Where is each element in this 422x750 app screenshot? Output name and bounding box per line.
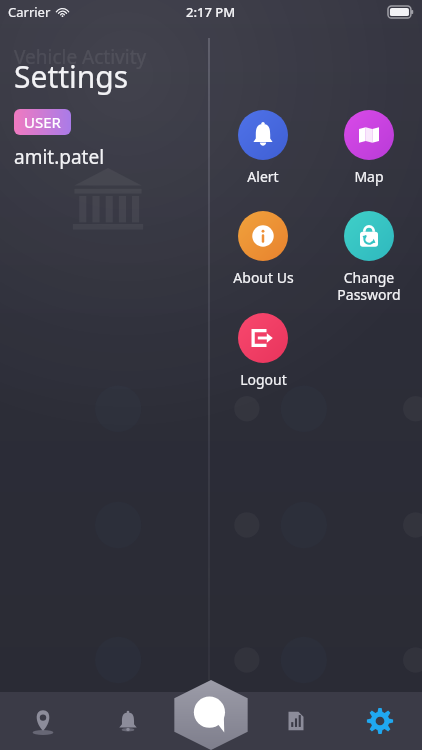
button[interactable]: Location	[0, 692, 85, 750]
staticText: Alert	[247, 167, 279, 186]
staticText: Carrier	[8, 3, 51, 21]
staticText: Vehicle Activity	[14, 44, 147, 70]
button[interactable]: Settings	[338, 692, 422, 750]
staticText: About Us	[233, 268, 294, 287]
button[interactable]: Logout	[215, 313, 311, 389]
staticText: Map	[354, 167, 384, 186]
staticText: Settings	[14, 56, 129, 97]
button[interactable]: Map	[321, 110, 417, 186]
staticText: Logout	[240, 370, 287, 389]
button[interactable]: Alert	[215, 110, 311, 186]
button[interactable]: Reports	[254, 692, 338, 750]
button[interactable]: Messages	[172, 680, 250, 750]
staticText: amit.patel	[14, 144, 105, 170]
staticText: Change Password	[337, 268, 401, 304]
button[interactable]: USER	[14, 109, 71, 135]
staticText: USER	[24, 112, 61, 132]
button[interactable]: About Us	[215, 211, 311, 287]
button[interactable]: Alerts	[85, 692, 170, 750]
button[interactable]: Change Password	[321, 211, 417, 304]
staticText: 2:17 PM	[186, 3, 236, 21]
